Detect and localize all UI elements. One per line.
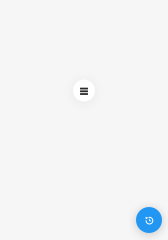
button[interactable]: Menu	[73, 79, 95, 101]
button[interactable]: History	[136, 207, 162, 233]
